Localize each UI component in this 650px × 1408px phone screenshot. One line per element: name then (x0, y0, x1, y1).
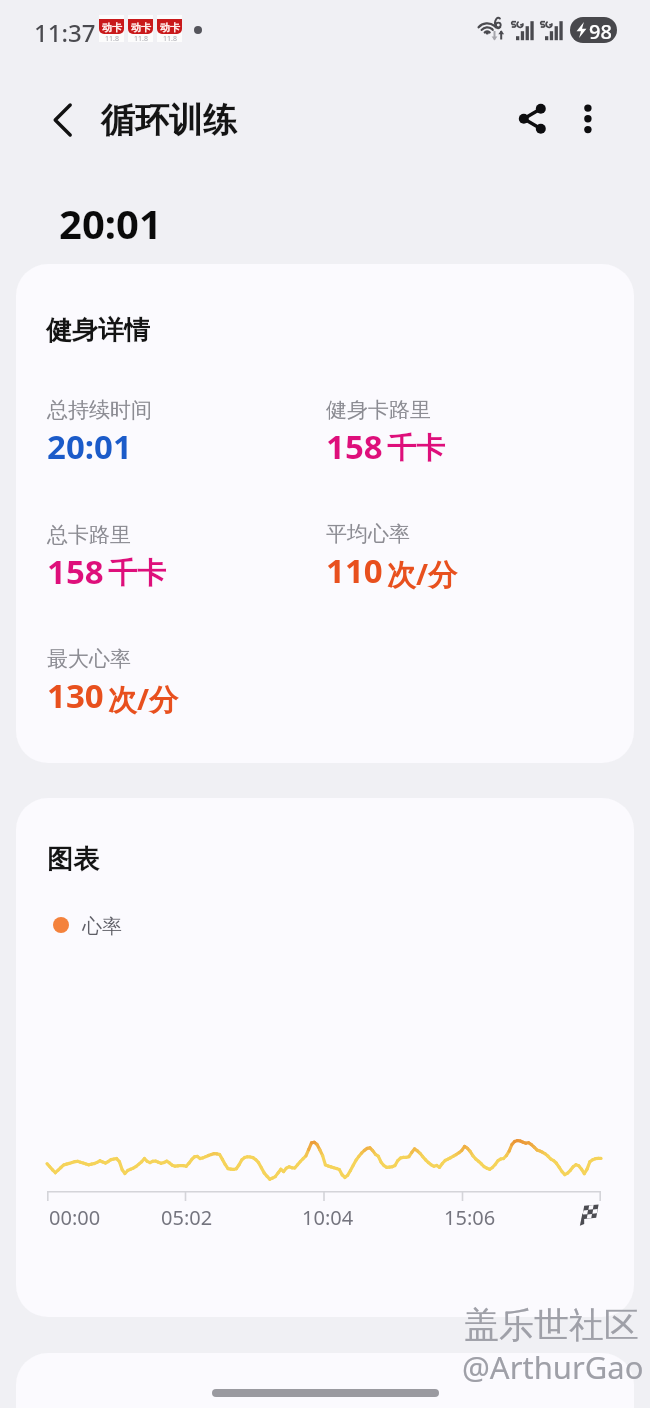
staticText: 158 (47, 549, 104, 594)
staticText: 00:00 (49, 1204, 101, 1231)
button[interactable]: Back (38, 98, 82, 142)
staticText: 健身详情 (46, 314, 150, 347)
staticText: 图表 (47, 843, 99, 876)
staticText: 最大心率 (47, 646, 131, 672)
staticText: 千卡 (108, 555, 166, 592)
button[interactable]: Share (509, 97, 555, 143)
staticText: @ArthurGao (462, 1346, 644, 1388)
staticText: 心率 (82, 914, 122, 939)
staticText: 次/分 (387, 554, 458, 594)
staticText: 11.8 (105, 34, 119, 44)
staticText: 130 (47, 673, 104, 718)
staticText: 次/分 (108, 679, 179, 719)
staticText: 10:04 (302, 1204, 354, 1231)
staticText: 15:06 (444, 1204, 496, 1231)
staticText: 11.8 (134, 34, 148, 44)
staticText: 健身卡路里 (326, 397, 431, 423)
staticText: 05:02 (161, 1204, 213, 1231)
staticText: 动卡 (102, 21, 122, 34)
staticText: 总卡路里 (47, 522, 131, 548)
staticText: 11.8 (163, 34, 177, 44)
staticText: 20:01 (59, 196, 162, 250)
staticText: 动卡 (160, 21, 180, 34)
staticText: 158 (326, 424, 383, 469)
staticText: 平均心率 (326, 521, 410, 547)
staticText: 盖乐世社区 (464, 1303, 639, 1347)
staticText: 11:37 (34, 16, 96, 49)
staticText: 20:01 (47, 424, 132, 469)
staticText: 千卡 (387, 430, 445, 467)
staticText: 98 (589, 18, 612, 43)
staticText: 循环训练 (101, 99, 237, 142)
staticText: 动卡 (131, 21, 151, 34)
staticText: 总持续时间 (47, 397, 152, 423)
staticText: 110 (326, 548, 383, 593)
button[interactable]: More options (572, 104, 604, 136)
